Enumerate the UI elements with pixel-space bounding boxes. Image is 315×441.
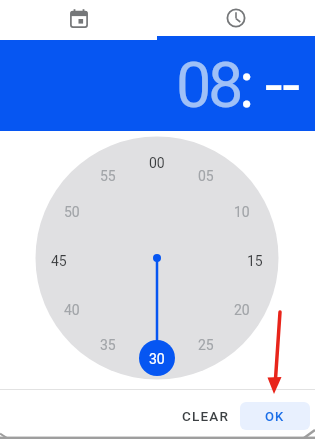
staticText: 45	[51, 253, 67, 269]
staticText: 25	[198, 337, 214, 353]
staticText: 55	[100, 168, 116, 184]
staticText: 35	[100, 337, 116, 353]
staticText: 00	[149, 155, 165, 171]
staticText: 05	[198, 168, 214, 184]
staticText: 10	[234, 204, 250, 220]
staticText: OK	[265, 409, 285, 424]
staticText: 15	[247, 253, 263, 269]
staticText: CLEAR	[182, 408, 230, 424]
staticText: 08	[176, 49, 240, 123]
staticText: --	[265, 49, 300, 123]
staticText: 20	[234, 302, 250, 318]
button[interactable]: CLEAR	[177, 402, 235, 430]
staticText: :	[239, 49, 255, 123]
staticText: 30	[149, 351, 165, 367]
button[interactable]	[157, 0, 315, 40]
button[interactable]	[0, 0, 157, 40]
button[interactable]: OK	[240, 402, 310, 430]
staticText: 50	[64, 204, 80, 220]
staticText: 40	[64, 302, 80, 318]
